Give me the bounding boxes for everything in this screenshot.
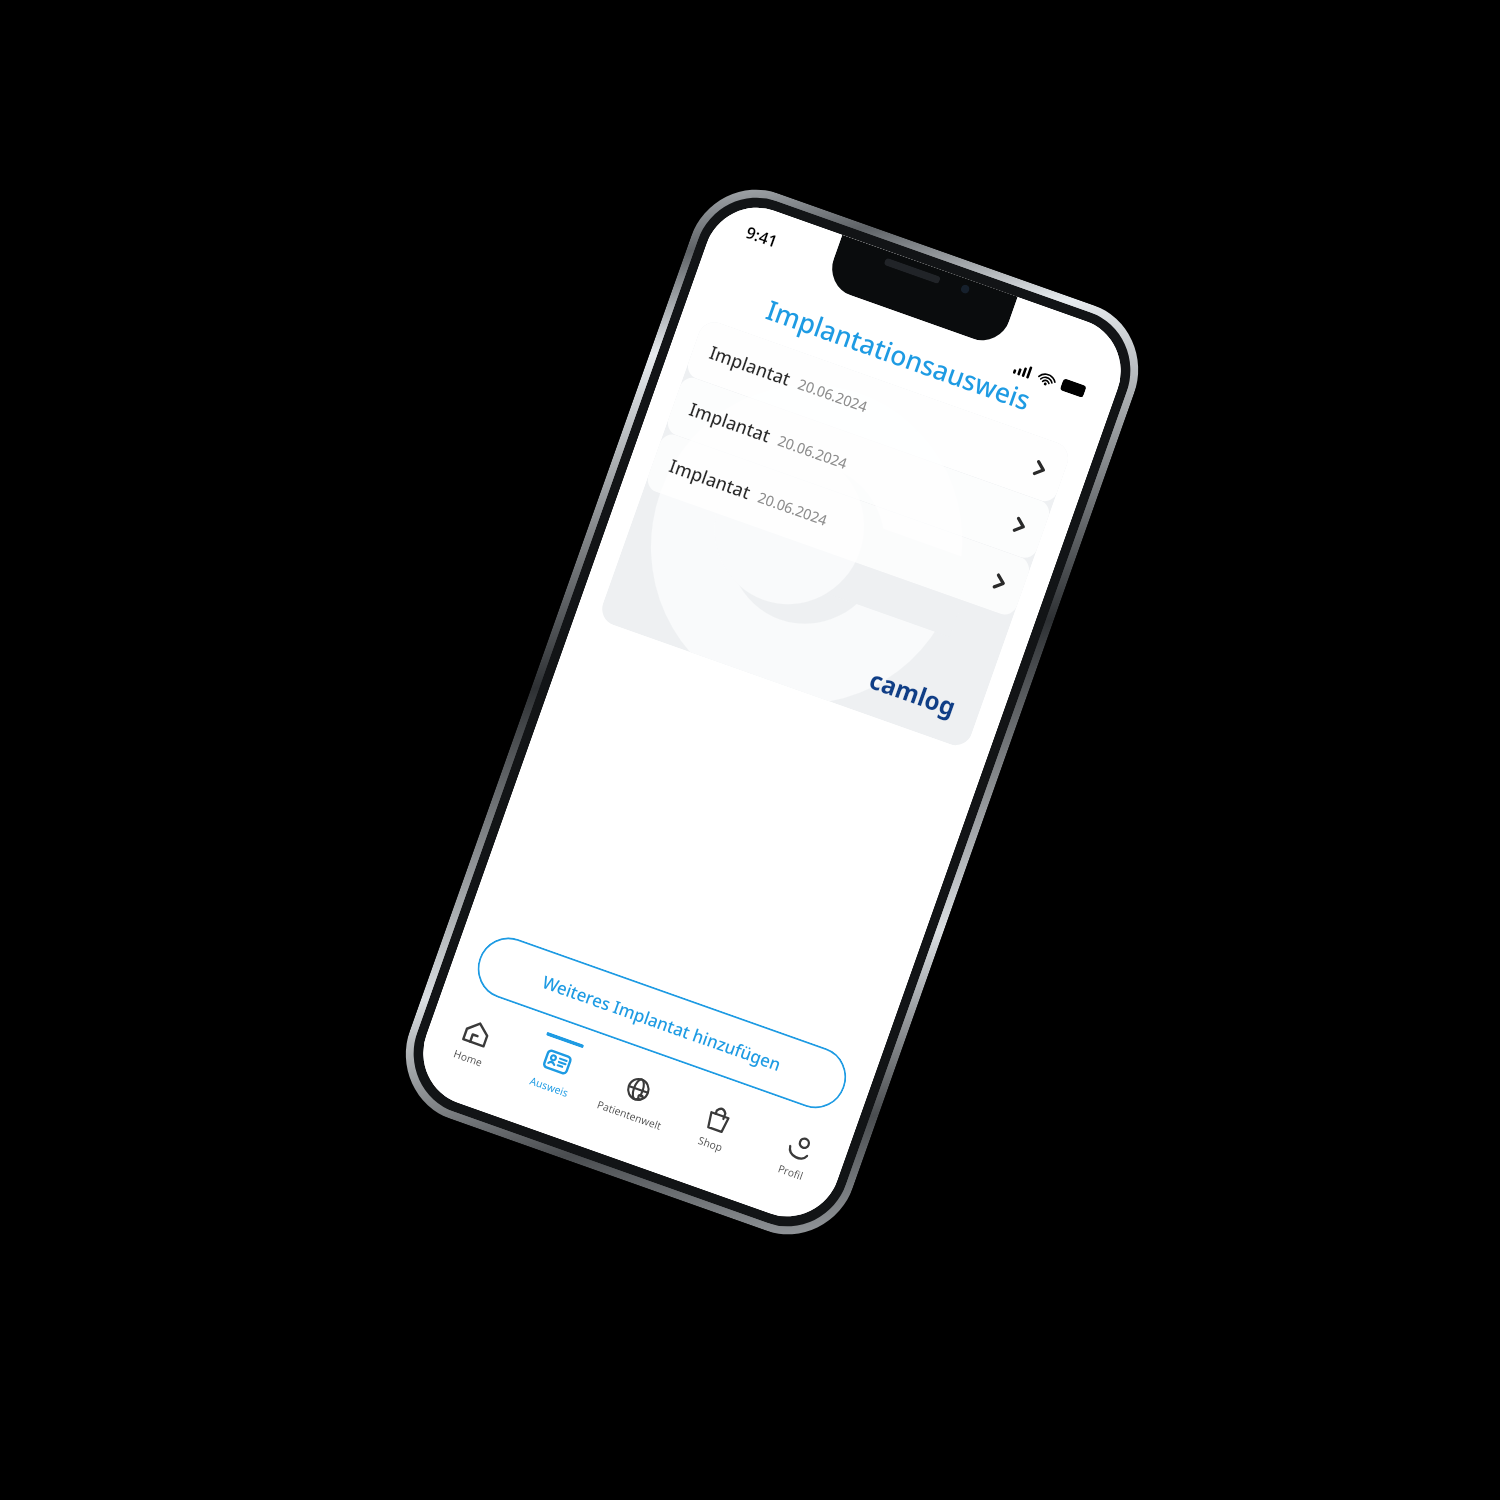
staticText: Home [451, 1046, 485, 1070]
staticText: 9:41 [743, 221, 781, 252]
staticText: Ausweis [528, 1073, 571, 1100]
staticText: Implantationsausweis [699, 269, 1098, 440]
staticText: 20.06.2024 [755, 487, 830, 530]
button[interactable]: Weiteres Implantat hinzufügen [469, 929, 855, 1117]
staticText: Profil [776, 1161, 805, 1183]
staticText: 20.06.2024 [795, 374, 870, 416]
staticText: Implantat [706, 340, 794, 392]
button[interactable]: Implantat [684, 318, 1073, 505]
button[interactable]: Shop [671, 1082, 763, 1163]
button[interactable]: Patientenwelt [591, 1054, 683, 1134]
staticText: camlog [865, 662, 961, 723]
staticText: Implantat [666, 453, 754, 505]
button[interactable]: Implantat [644, 431, 1033, 618]
staticText: Implantat [686, 396, 774, 448]
staticText: 20.06.2024 [775, 430, 850, 473]
button[interactable]: Ausweis [510, 1025, 602, 1106]
button[interactable]: Profil [752, 1111, 844, 1192]
button[interactable]: Home [429, 997, 521, 1077]
staticText: Patientenwelt [595, 1097, 664, 1133]
button[interactable]: Implantat [664, 374, 1053, 561]
staticText: Weiteres Implantat hinzufügen [539, 970, 785, 1077]
staticText: Shop [696, 1132, 725, 1155]
